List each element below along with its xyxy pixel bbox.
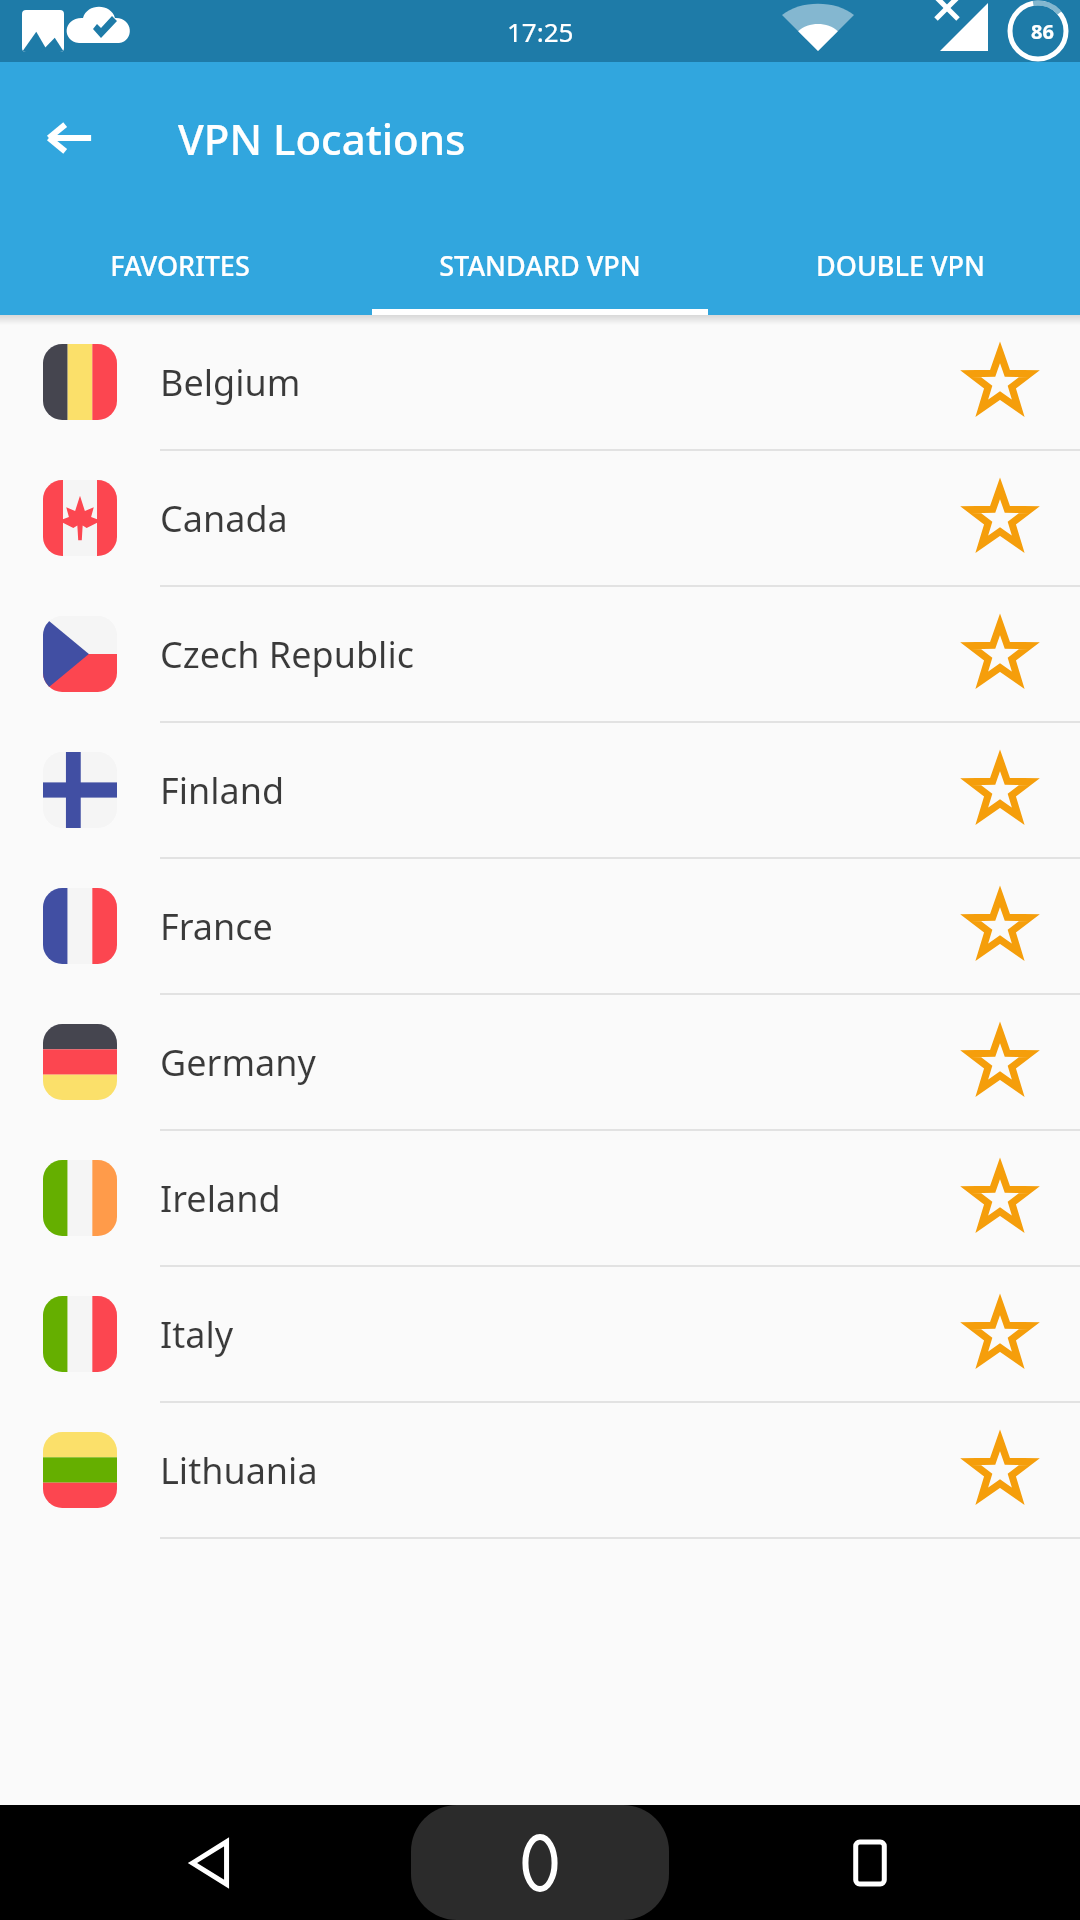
button[interactable]: Favorite Finland bbox=[920, 723, 1080, 857]
staticText: DOUBLE VPN bbox=[816, 247, 985, 284]
staticText: Ireland bbox=[160, 1174, 920, 1223]
staticText: 17:25 bbox=[507, 14, 574, 49]
button[interactable]: Finland bbox=[0, 723, 1080, 857]
staticText: Italy bbox=[160, 1310, 920, 1359]
button[interactable]: France bbox=[0, 859, 1080, 993]
staticText: FAVORITES bbox=[110, 247, 250, 284]
staticText: France bbox=[160, 902, 920, 951]
staticText: Germany bbox=[160, 1038, 920, 1087]
staticText: VPN Locations bbox=[178, 110, 466, 167]
staticText: Finland bbox=[160, 766, 920, 815]
button[interactable]: Germany bbox=[0, 995, 1080, 1129]
staticText: Czech Republic bbox=[160, 630, 920, 679]
staticText: 86 bbox=[1031, 18, 1054, 45]
staticText: STANDARD VPN bbox=[439, 247, 641, 284]
button[interactable]: Back bbox=[26, 94, 114, 182]
button[interactable]: Canada bbox=[0, 451, 1080, 585]
button[interactable]: DOUBLE VPN bbox=[720, 215, 1080, 315]
button[interactable]: Ireland bbox=[0, 1131, 1080, 1265]
staticText: Belgium bbox=[160, 358, 920, 407]
button[interactable]: Favorite Czech Republic bbox=[920, 587, 1080, 721]
button[interactable]: Favorite Ireland bbox=[920, 1131, 1080, 1265]
button[interactable]: Favorite Lithuania bbox=[920, 1403, 1080, 1537]
button[interactable]: STANDARD VPN bbox=[360, 215, 720, 315]
staticText: Lithuania bbox=[160, 1446, 920, 1495]
button[interactable]: Back bbox=[160, 1813, 260, 1913]
button[interactable]: Lithuania bbox=[0, 1403, 1080, 1537]
button[interactable]: Home bbox=[411, 1805, 669, 1920]
button[interactable]: Belgium bbox=[0, 315, 1080, 449]
button[interactable]: Favorite Canada bbox=[920, 451, 1080, 585]
button[interactable]: Italy bbox=[0, 1267, 1080, 1401]
button[interactable]: Favorite France bbox=[920, 859, 1080, 993]
button[interactable]: Czech Republic bbox=[0, 587, 1080, 721]
staticText: Canada bbox=[160, 494, 920, 543]
button[interactable]: Recent apps bbox=[820, 1813, 920, 1913]
button[interactable]: Favorite Italy bbox=[920, 1267, 1080, 1401]
button[interactable]: FAVORITES bbox=[0, 215, 360, 315]
button[interactable]: Favorite Belgium bbox=[920, 315, 1080, 449]
button[interactable]: Favorite Germany bbox=[920, 995, 1080, 1129]
